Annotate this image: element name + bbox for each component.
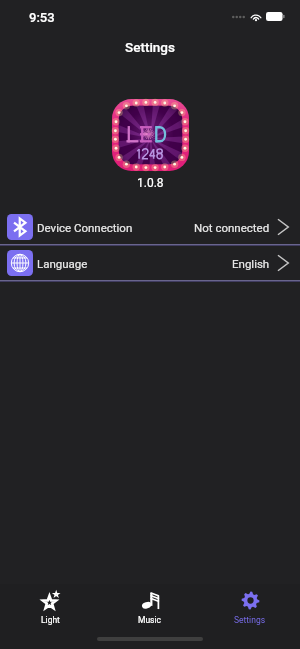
staticText: 9:53 [29,10,55,25]
button[interactable]: Language [0,246,300,280]
button[interactable]: Settings [200,584,300,631]
staticText: Device Connection [37,221,133,234]
staticText: Light [41,615,60,625]
other: Bluetooth [7,214,33,240]
button[interactable]: Music [100,584,200,631]
staticText: English [232,257,270,270]
staticText: 1.0.8 [137,176,164,190]
staticText: Not connected [194,221,270,234]
button[interactable]: Bluetooth [0,210,300,244]
staticText: Music [138,615,162,625]
staticText: Language [37,257,88,270]
button[interactable]: Light [0,584,100,631]
other: Language [7,250,33,276]
staticText: Settings [234,615,266,625]
staticText: Settings [125,39,175,55]
